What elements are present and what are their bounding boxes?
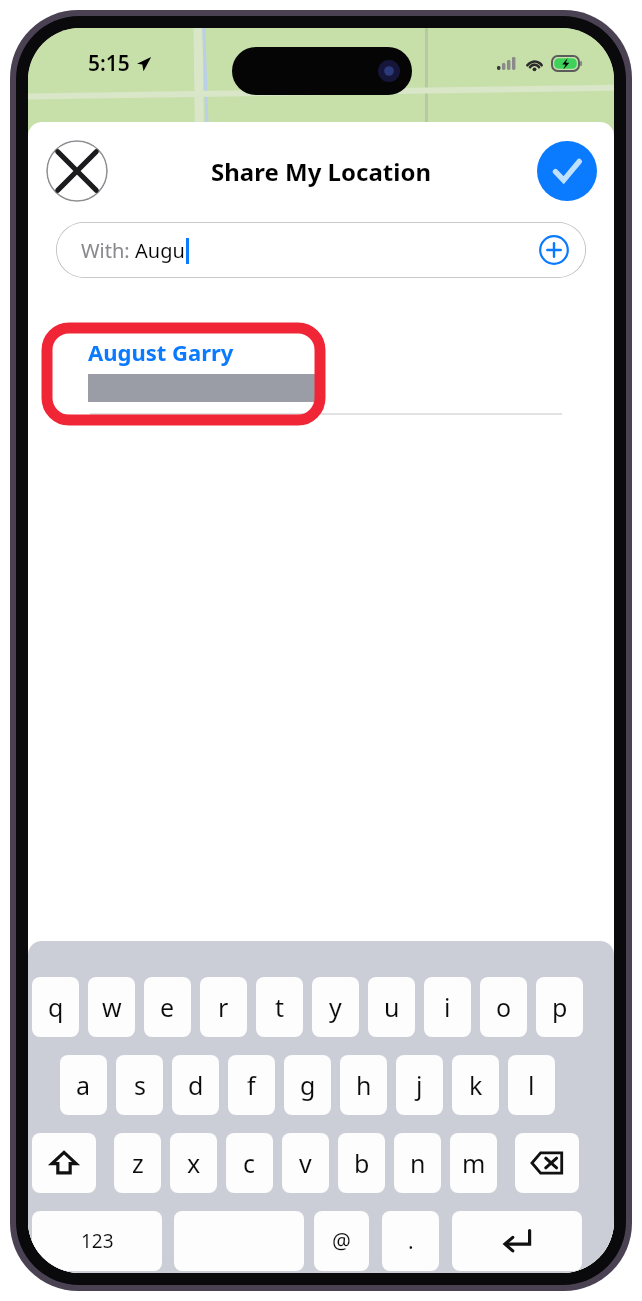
staticText: p [552, 990, 568, 1024]
staticText: w [102, 990, 122, 1024]
button[interactable] [174, 1211, 304, 1271]
button[interactable]: w [88, 977, 135, 1037]
staticText: Augu [135, 237, 185, 264]
button[interactable]: Backspace [515, 1133, 579, 1193]
staticText: o [496, 990, 512, 1024]
staticText: x [187, 1146, 201, 1180]
button[interactable]: j [396, 1055, 443, 1115]
button[interactable]: s [116, 1055, 163, 1115]
button[interactable]: k [452, 1055, 499, 1115]
button[interactable]: r [200, 977, 247, 1037]
button[interactable]: e [144, 977, 191, 1037]
button[interactable]: o [480, 977, 527, 1037]
staticText: e [160, 990, 175, 1024]
button[interactable]: t [256, 977, 303, 1037]
staticText: 123 [81, 1228, 114, 1254]
staticText: y [329, 990, 342, 1024]
staticText: q [48, 990, 64, 1024]
staticText: s [134, 1068, 146, 1102]
button[interactable]: b [338, 1133, 385, 1193]
button[interactable]: l [508, 1055, 555, 1115]
staticText: d [188, 1068, 204, 1102]
staticText: @ [332, 1227, 351, 1256]
staticText: f [247, 1068, 256, 1102]
staticText: 5:15 [88, 49, 130, 78]
button[interactable]: i [424, 977, 471, 1037]
staticText: t [275, 990, 285, 1024]
button[interactable]: p [536, 977, 583, 1037]
staticText: i [444, 990, 451, 1024]
button[interactable]: q [32, 977, 79, 1037]
button[interactable]: v [282, 1133, 329, 1193]
button[interactable]: Done [537, 141, 597, 201]
staticText: l [528, 1068, 535, 1102]
staticText: m [462, 1146, 486, 1180]
staticText: . [408, 1227, 414, 1256]
staticText: k [469, 1068, 483, 1102]
button[interactable]: d [172, 1055, 219, 1115]
button[interactable]: . [382, 1211, 439, 1271]
button[interactable]: g [284, 1055, 331, 1115]
staticText: u [384, 990, 400, 1024]
button[interactable]: August Garry [88, 337, 318, 402]
staticText: b [354, 1146, 370, 1180]
staticText: n [410, 1146, 426, 1180]
staticText: With: [81, 237, 135, 264]
staticText: August Garry [88, 337, 234, 367]
staticText: a [76, 1068, 91, 1102]
button[interactable]: u [368, 977, 415, 1037]
button[interactable]: h [340, 1055, 387, 1115]
button[interactable]: With: [56, 222, 586, 278]
button[interactable]: m [450, 1133, 497, 1193]
staticText: g [300, 1068, 316, 1102]
staticText: h [356, 1068, 372, 1102]
button[interactable]: @ [314, 1211, 369, 1271]
staticText: Share My Location [211, 155, 431, 188]
button[interactable]: Return [452, 1211, 582, 1271]
button[interactable]: c [226, 1133, 273, 1193]
button[interactable]: x [170, 1133, 217, 1193]
button[interactable]: Shift [32, 1133, 96, 1193]
button[interactable]: n [394, 1133, 441, 1193]
button[interactable]: Add contact [539, 235, 569, 265]
staticText: r [218, 990, 229, 1024]
button[interactable]: z [114, 1133, 161, 1193]
staticText: c [243, 1146, 256, 1180]
button[interactable]: y [312, 977, 359, 1037]
button[interactable]: Close [46, 140, 108, 202]
button[interactable]: f [228, 1055, 275, 1115]
button[interactable]: 123 [32, 1211, 162, 1271]
button[interactable]: a [60, 1055, 107, 1115]
staticText: j [416, 1068, 423, 1102]
staticText: z [132, 1146, 144, 1180]
staticText: v [299, 1146, 312, 1180]
